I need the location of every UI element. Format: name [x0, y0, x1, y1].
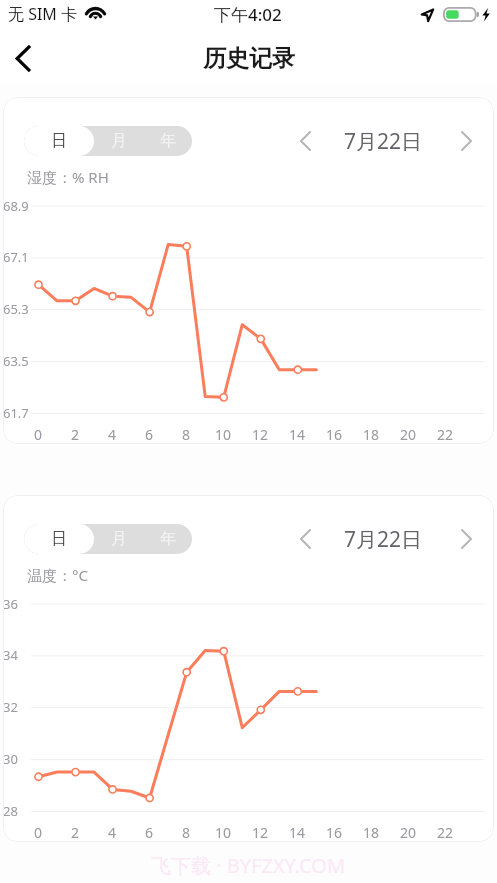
- staticText: 湿度：% RH: [27, 167, 109, 187]
- button[interactable]: Next day: [451, 124, 481, 158]
- staticText: 飞下载 · BYFZXY.COM: [151, 852, 346, 879]
- staticText: 22: [437, 823, 454, 842]
- staticText: 10: [215, 823, 232, 842]
- staticText: 7月22日: [344, 525, 423, 554]
- staticText: 日: [51, 131, 67, 151]
- staticText: 63.5: [3, 352, 29, 370]
- staticText: 10: [215, 425, 232, 444]
- staticText: 14: [289, 823, 306, 842]
- button[interactable]: Previous day: [290, 124, 320, 158]
- button[interactable]: Next day: [451, 522, 481, 556]
- staticText: 2: [71, 425, 80, 444]
- staticText: 日: [51, 529, 67, 549]
- staticText: 温度：°C: [27, 565, 88, 585]
- staticText: 4: [108, 425, 117, 444]
- staticText: 7月22日: [344, 127, 423, 156]
- staticText: 12: [252, 425, 269, 444]
- staticText: 16: [326, 425, 343, 444]
- staticText: 2: [71, 823, 80, 842]
- button[interactable]: 年: [143, 524, 192, 554]
- staticText: 0: [34, 425, 43, 444]
- other: Location: [421, 8, 434, 22]
- staticText: 14: [289, 425, 306, 444]
- other: Battery: [443, 7, 480, 22]
- staticText: 下午4:02: [214, 3, 282, 26]
- staticText: 8: [182, 823, 191, 842]
- staticText: 22: [437, 425, 454, 444]
- button[interactable]: 月: [94, 126, 143, 156]
- staticText: 年: [160, 131, 176, 151]
- staticText: 28: [3, 802, 18, 820]
- staticText: 月: [111, 131, 127, 151]
- staticText: 20: [400, 823, 417, 842]
- staticText: 无 SIM 卡: [8, 3, 78, 25]
- staticText: 8: [182, 425, 191, 444]
- staticText: 36: [3, 595, 18, 613]
- staticText: 65.3: [3, 300, 29, 318]
- staticText: 67.1: [3, 248, 29, 266]
- staticText: 6: [145, 823, 154, 842]
- staticText: 6: [145, 425, 154, 444]
- button[interactable]: Previous day: [290, 522, 320, 556]
- staticText: 18: [363, 425, 380, 444]
- staticText: 32: [3, 698, 18, 716]
- staticText: 4: [108, 823, 117, 842]
- staticText: 18: [363, 823, 380, 842]
- staticText: 16: [326, 823, 343, 842]
- button[interactable]: 年: [143, 126, 192, 156]
- staticText: 历史记录: [203, 44, 295, 73]
- button[interactable]: 月: [94, 524, 143, 554]
- staticText: 12: [252, 823, 269, 842]
- staticText: 0: [34, 823, 43, 842]
- button[interactable]: 日: [24, 126, 94, 156]
- staticText: 月: [111, 529, 127, 549]
- staticText: 34: [3, 646, 18, 664]
- staticText: 20: [400, 425, 417, 444]
- staticText: 68.9: [3, 197, 29, 215]
- staticText: 30: [3, 750, 18, 768]
- staticText: 年: [160, 529, 176, 549]
- staticText: 61.7: [3, 404, 29, 422]
- button[interactable]: 日: [24, 524, 94, 554]
- button[interactable]: Back: [0, 33, 46, 83]
